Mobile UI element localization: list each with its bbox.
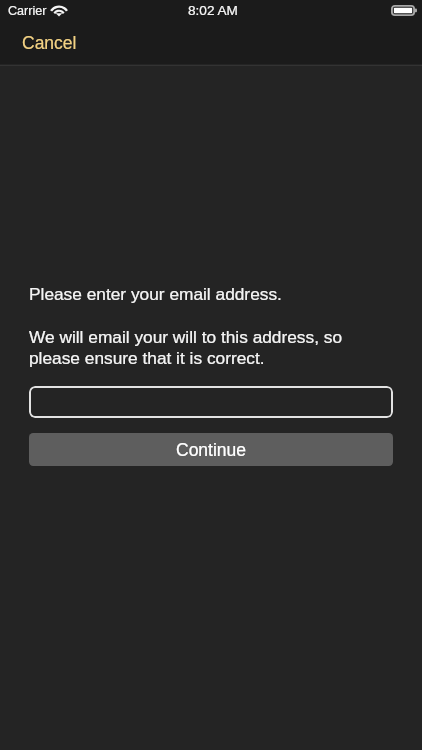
staticText: Cancel — [22, 33, 77, 53]
button[interactable] — [29, 386, 393, 418]
staticText: Please enter your email address. — [29, 284, 282, 303]
button[interactable]: Continue — [29, 433, 393, 466]
other: Wi-Fi — [51, 5, 67, 16]
staticText: Carrier — [8, 4, 47, 18]
staticText: Continue — [176, 440, 247, 460]
staticText: 8:02 AM — [188, 3, 238, 18]
other: Battery — [391, 5, 417, 16]
button[interactable]: Cancel — [0, 26, 91, 58]
staticText: We will email your will to this address,… — [29, 327, 393, 367]
